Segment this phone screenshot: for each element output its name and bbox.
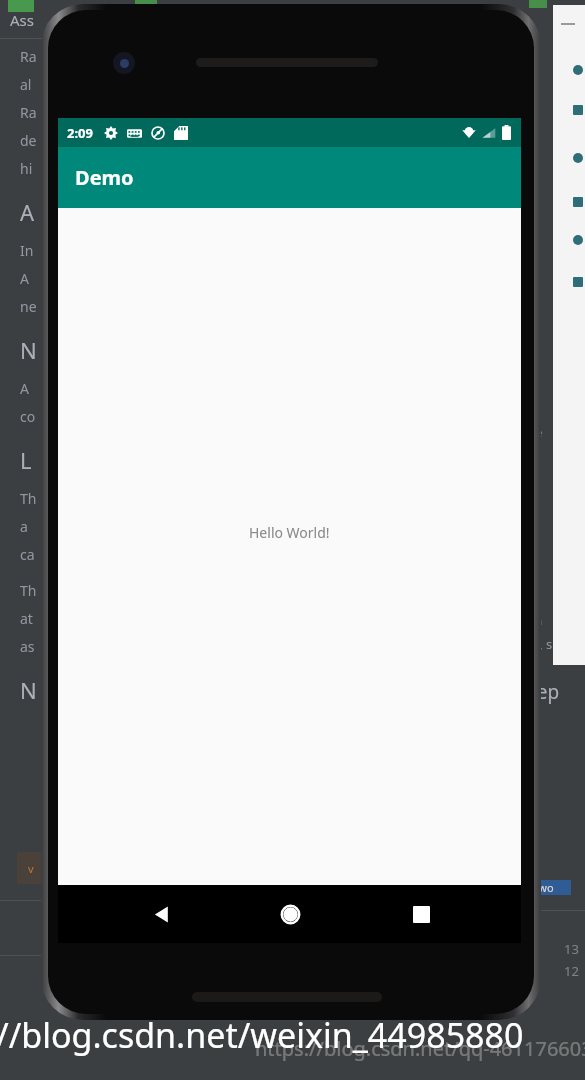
staticText: Demo [75,164,134,191]
staticText: gs, s [525,635,553,653]
staticText: de [20,131,37,150]
staticText: 13 [564,940,579,958]
staticText: hi [20,159,33,178]
staticText: A [20,379,29,398]
staticText: a [20,517,28,536]
staticText: Th [20,581,37,600]
staticText: dep [525,679,560,705]
staticText: Ra [20,47,37,66]
staticText: Ass [10,10,34,30]
staticText: ne [20,297,37,316]
staticText: en [527,611,543,629]
staticText: N [20,675,37,705]
staticText: A [20,197,35,227]
staticText: e [527,362,539,389]
staticText: al [20,75,32,94]
staticText: a [527,318,535,337]
staticText: ca [20,545,35,564]
staticText: 12 [564,962,579,980]
staticText: v [28,861,34,876]
button[interactable]: Home [260,885,320,943]
staticText: N [20,335,37,365]
staticText: ıt [527,527,536,545]
button[interactable]: Back [132,885,192,943]
staticText: ir [527,92,537,111]
staticText: lu [527,185,540,204]
staticText: In [20,241,34,260]
staticText: e [527,123,535,142]
staticText: //blog.csdn.net/weixin_44985880 [0,1012,524,1058]
staticText: as [20,637,35,656]
staticText: L [20,445,32,475]
staticText: Ra [20,103,37,122]
staticText: Hello World! [249,523,330,542]
staticText: 2:09 [67,124,93,142]
staticText: at [20,609,33,628]
staticText: e [535,423,543,441]
staticText: Th [20,489,37,508]
staticText: co [20,407,36,426]
staticText: A [20,269,29,288]
staticText: rk:wo [525,880,554,895]
button[interactable]: Recent apps [391,885,451,943]
staticText: https://blog.csdn.net/qq-461176603 [255,1035,585,1062]
